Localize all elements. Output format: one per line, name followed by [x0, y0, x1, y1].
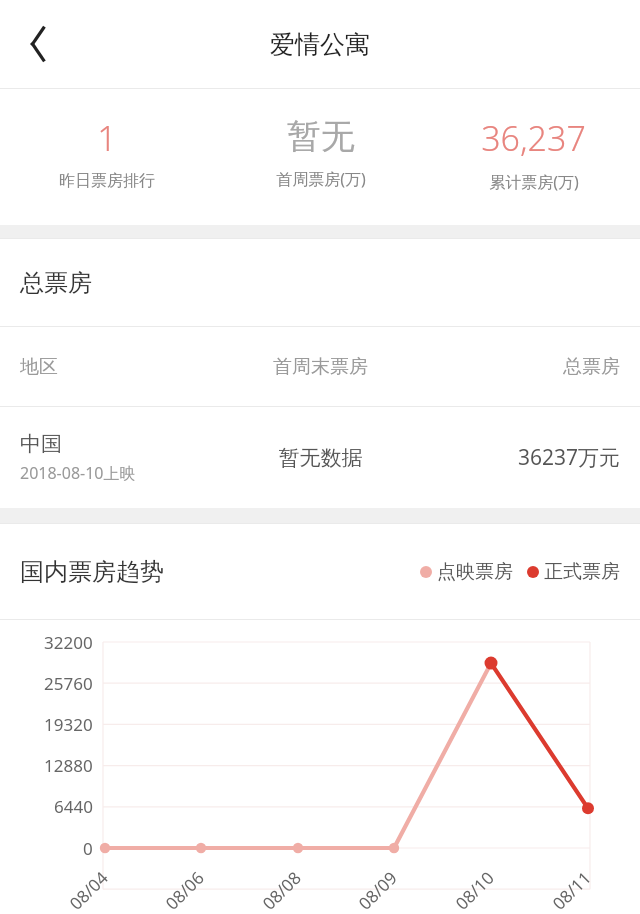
staticText: 1: [97, 115, 117, 161]
staticText: 昨日票房排行: [59, 171, 155, 191]
staticText: 地区: [20, 355, 214, 379]
staticText: 爱情公寓: [270, 29, 370, 60]
button[interactable]: 36,237: [427, 89, 640, 225]
staticText: 正式票房: [544, 560, 620, 584]
staticText: 累计票房(万): [489, 171, 579, 193]
staticText: 首周票房(万): [276, 168, 366, 190]
staticText: 36,237: [481, 115, 586, 161]
staticText: 中国: [20, 431, 62, 457]
staticText: 总票房: [20, 268, 92, 298]
button[interactable]: 正式票房: [527, 560, 620, 584]
staticText: 国内票房趋势: [20, 557, 164, 587]
button[interactable]: 中国: [0, 407, 640, 508]
button[interactable]: 1: [0, 89, 214, 225]
staticText: 首周末票房: [214, 355, 427, 379]
button[interactable]: 暂无: [214, 89, 427, 225]
staticText: 36237万元: [427, 443, 620, 472]
button[interactable]: 点映票房: [420, 560, 513, 584]
staticText: 点映票房: [437, 560, 513, 584]
button[interactable]: Back: [10, 16, 66, 72]
staticText: 暂无数据: [214, 445, 427, 471]
staticText: 暂无: [287, 115, 355, 158]
staticText: 总票房: [427, 355, 620, 379]
staticText: 2018-08-10上映: [20, 462, 136, 484]
